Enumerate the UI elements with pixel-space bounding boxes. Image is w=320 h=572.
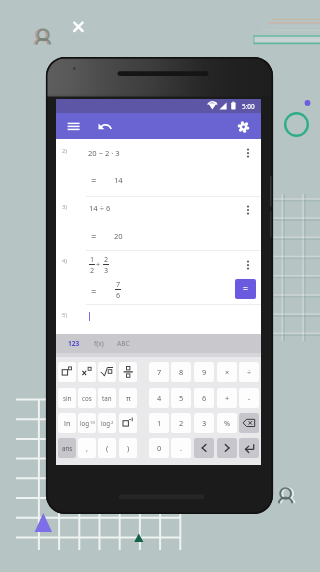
staticText: 1 [90, 254, 95, 264]
staticText: ans [62, 444, 73, 452]
button[interactable]: ) [119, 438, 137, 458]
button[interactable]: ABC [110, 334, 136, 353]
staticText: 8 [179, 367, 184, 377]
staticText: . [180, 443, 182, 453]
staticText: 4 [157, 393, 162, 403]
button[interactable]: ans [58, 438, 76, 458]
staticText: 10 [90, 420, 95, 426]
staticText: 14 [114, 175, 123, 185]
staticText: 4) [62, 257, 68, 265]
button[interactable]: key [194, 438, 214, 458]
staticText: = [91, 174, 97, 187]
button[interactable]: 1 [149, 413, 169, 433]
button[interactable]: , [78, 438, 96, 458]
staticText: - [248, 393, 251, 403]
staticText: = [243, 283, 248, 295]
staticText: ÷ [247, 367, 252, 377]
button[interactable]: Settings [233, 116, 254, 137]
button[interactable]: Equals [235, 279, 256, 299]
button[interactable]: log [78, 413, 96, 433]
button[interactable]: 7 [149, 362, 169, 382]
staticText: 2 [90, 265, 95, 275]
button[interactable]: key [239, 438, 259, 458]
button[interactable]: key [78, 362, 96, 382]
staticText: log [80, 419, 90, 427]
button[interactable]: 8 [171, 362, 191, 382]
staticText: ( [106, 443, 109, 453]
button[interactable]: cos [78, 388, 96, 408]
button[interactable]: % [217, 413, 237, 433]
button[interactable]: log [98, 413, 116, 433]
button[interactable]: key [119, 362, 137, 382]
button[interactable]: key [98, 362, 116, 382]
button[interactable]: key [217, 438, 237, 458]
staticText: 1 [157, 418, 162, 428]
button[interactable]: - [239, 388, 259, 408]
staticText: 2) [62, 147, 68, 155]
button[interactable]: 123 [61, 334, 87, 353]
button[interactable]: f(x) [86, 334, 112, 353]
staticText: 5:00 [242, 102, 255, 111]
button[interactable]: key [119, 413, 137, 433]
button[interactable]: ( [98, 438, 116, 458]
button[interactable]: 2 [171, 413, 191, 433]
button[interactable]: More options [242, 203, 254, 217]
staticText: 5) [62, 311, 68, 319]
staticText: 0 [157, 443, 162, 453]
button[interactable]: More options [242, 146, 254, 160]
staticText: % [224, 418, 231, 428]
staticText: 2 [111, 420, 114, 426]
staticText: 14 ÷ 6 [89, 203, 111, 213]
staticText: + [96, 260, 101, 270]
staticText: = [91, 285, 97, 298]
staticText: 20 [114, 231, 123, 241]
button[interactable]: Undo [94, 116, 116, 136]
staticText: ) [127, 443, 130, 453]
button[interactable]: + [217, 388, 237, 408]
staticText: sin [63, 394, 72, 402]
button[interactable]: 9 [194, 362, 214, 382]
staticText: 9 [202, 367, 207, 377]
staticText: ln [64, 418, 71, 428]
staticText: π [126, 393, 131, 403]
staticText: 2 [104, 254, 109, 264]
staticText: cos [82, 394, 92, 402]
staticText: × [225, 367, 230, 377]
button[interactable]: 6 [194, 388, 214, 408]
staticText: 7 [157, 367, 162, 377]
button[interactable]: 0 [149, 438, 169, 458]
staticText: tan [102, 394, 112, 402]
staticText: 6 [202, 393, 207, 403]
staticText: 20 − 2 · 3 [88, 148, 120, 158]
staticText: f(x) [94, 339, 104, 348]
button[interactable]: key [239, 413, 259, 433]
button[interactable]: sin [58, 388, 76, 408]
staticText: , [86, 443, 88, 453]
button[interactable]: π [119, 388, 137, 408]
button[interactable]: 5 [171, 388, 191, 408]
button[interactable]: More options [242, 258, 254, 272]
button[interactable]: ln [58, 413, 76, 433]
staticText: + [225, 393, 230, 403]
staticText: 5 [179, 393, 184, 403]
staticText: 2 [179, 418, 184, 428]
button[interactable]: 4 [149, 388, 169, 408]
staticText: 3 [202, 418, 207, 428]
button[interactable]: key [58, 362, 76, 382]
staticText: = [91, 230, 97, 243]
staticText: ABC [117, 339, 130, 348]
button[interactable]: . [171, 438, 191, 458]
staticText: 3 [104, 265, 109, 275]
button[interactable]: tan [98, 388, 116, 408]
button[interactable]: 3 [194, 413, 214, 433]
staticText: 123 [68, 339, 80, 348]
staticText: 7 [116, 279, 121, 289]
staticText: log [101, 419, 111, 427]
staticText: 3) [62, 203, 68, 211]
button[interactable]: × [217, 362, 237, 382]
button[interactable]: ÷ [239, 362, 259, 382]
button[interactable]: Menu [60, 116, 80, 136]
staticText: 6 [116, 290, 121, 300]
